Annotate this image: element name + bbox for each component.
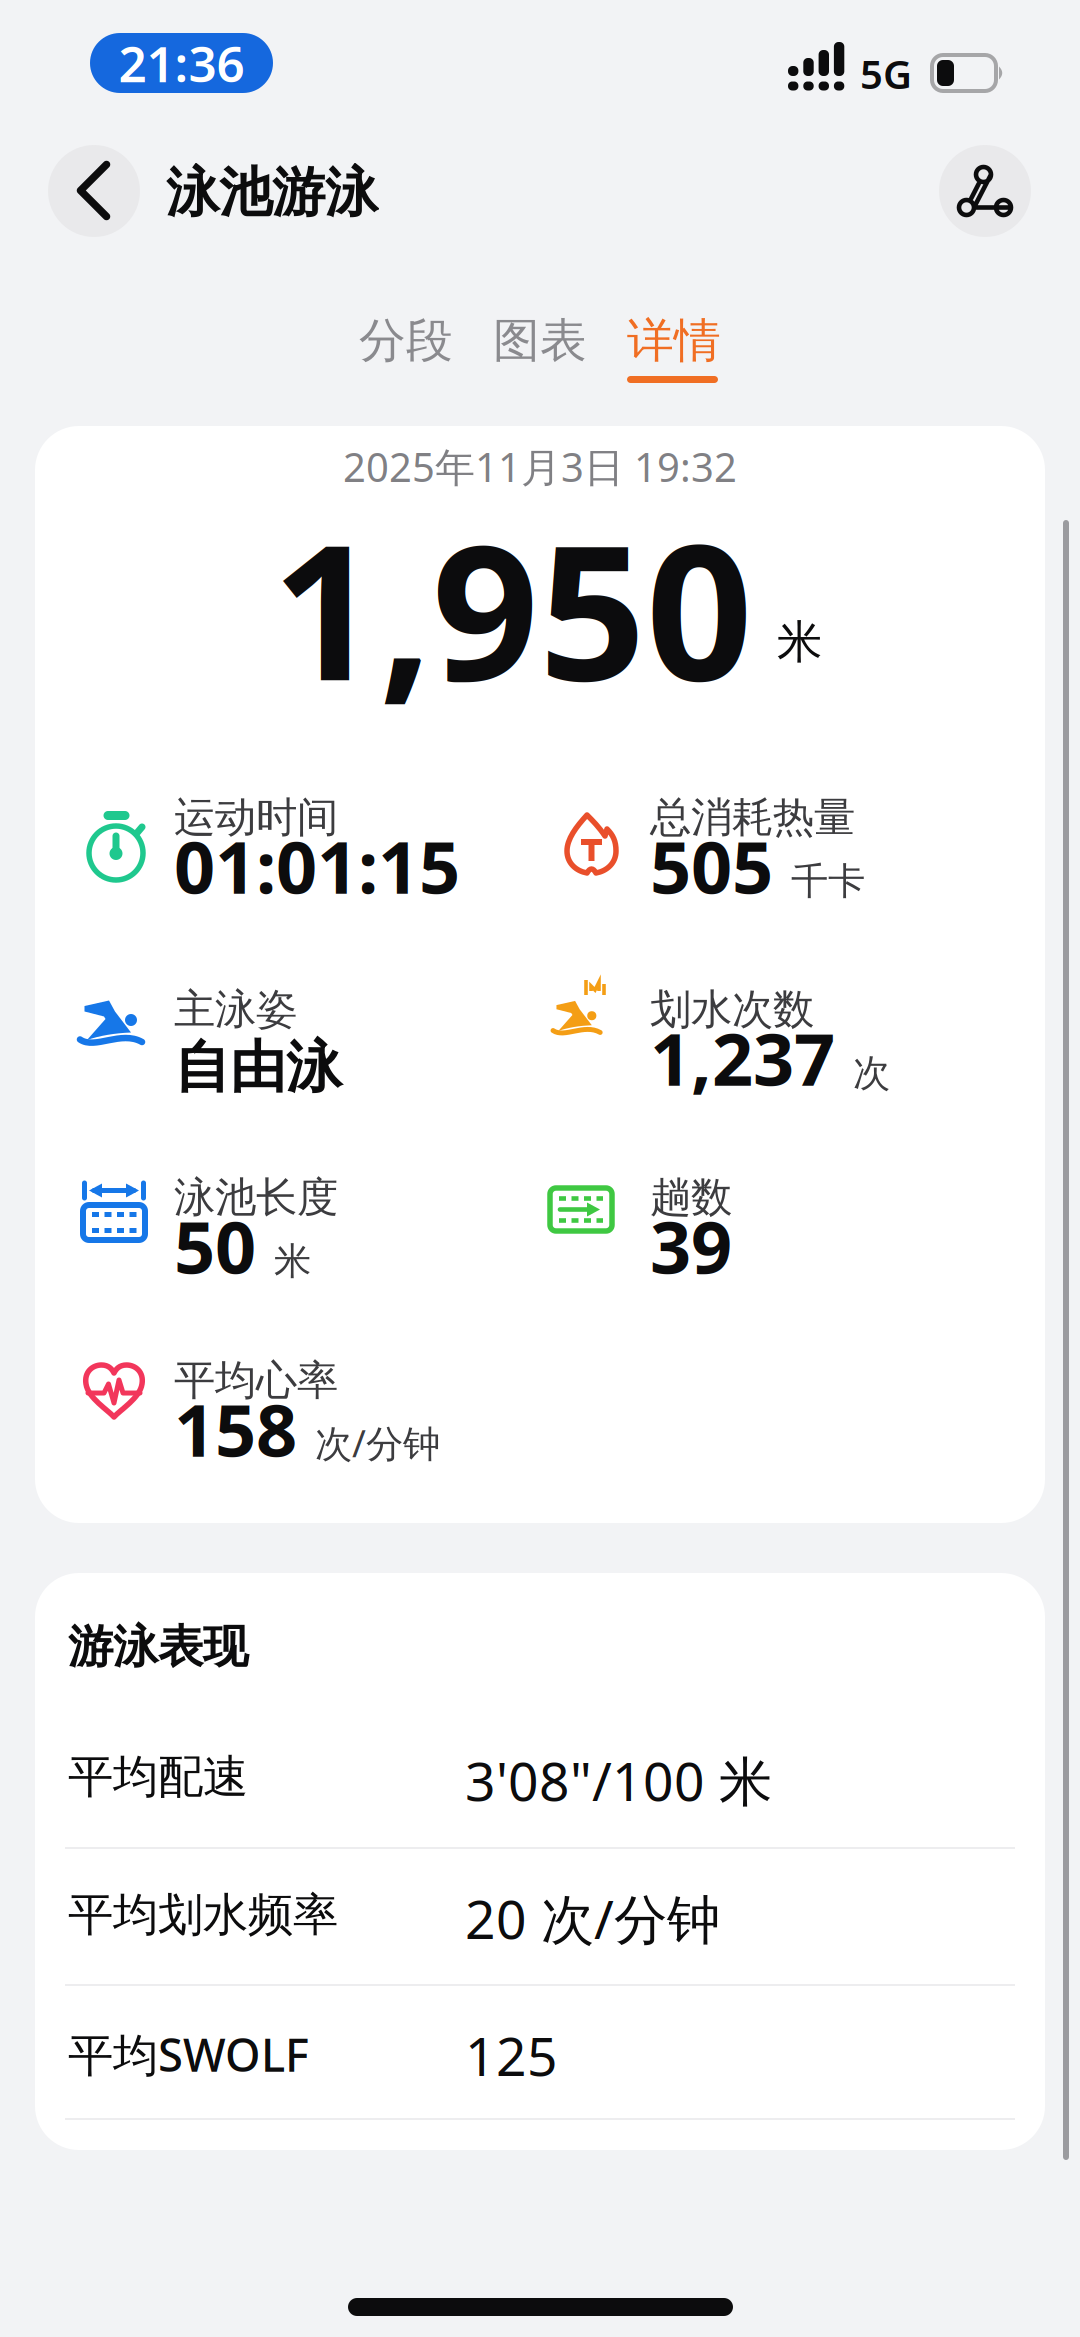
staticText: 趟数: [650, 1172, 732, 1223]
staticText: 主泳姿: [174, 984, 297, 1035]
staticText: 158: [174, 1381, 297, 1477]
button[interactable]: 分段: [359, 312, 453, 369]
staticText: 3'08"/100 米: [465, 1745, 772, 1816]
staticText: 125: [465, 2020, 558, 2091]
button[interactable]: Back: [48, 145, 140, 237]
staticText: 01:01:15: [174, 818, 460, 914]
staticText: 自由泳: [174, 1033, 342, 1102]
staticText: 39: [650, 1198, 732, 1294]
button[interactable]: Share: [939, 145, 1031, 237]
staticText: 运动时间: [174, 792, 338, 843]
staticText: 505: [650, 818, 773, 914]
staticText: 分段: [359, 312, 453, 369]
staticText: 平均心率: [174, 1355, 338, 1406]
staticText: 平均SWOLF: [68, 2024, 309, 2084]
button[interactable]: 详情: [627, 312, 721, 369]
staticText: 总消耗热量: [650, 792, 855, 843]
staticText: 1,237: [650, 1010, 835, 1106]
staticText: 21:36: [118, 30, 244, 96]
staticText: 50: [174, 1198, 256, 1294]
staticText: 划水次数: [650, 984, 814, 1035]
staticText: 米: [274, 1238, 311, 1284]
staticText: 泳池长度: [174, 1172, 338, 1223]
staticText: 游泳表现: [68, 1619, 248, 1675]
staticText: 泳池游泳: [166, 160, 378, 225]
staticText: 次: [853, 1050, 890, 1096]
staticText: 图表: [493, 312, 587, 369]
staticText: 20 次/分钟: [465, 1883, 720, 1954]
staticText: 2025年11月3日 19:32: [343, 440, 737, 493]
staticText: 平均划水频率: [68, 1887, 338, 1943]
staticText: 米: [777, 614, 822, 670]
staticText: 次/分钟: [315, 1418, 440, 1468]
button[interactable]: 图表: [493, 312, 587, 369]
staticText: 5G: [860, 47, 912, 100]
staticText: 1,950: [272, 484, 753, 732]
staticText: 千卡: [791, 858, 865, 904]
staticText: 平均配速: [68, 1749, 248, 1805]
staticText: 详情: [627, 312, 721, 369]
